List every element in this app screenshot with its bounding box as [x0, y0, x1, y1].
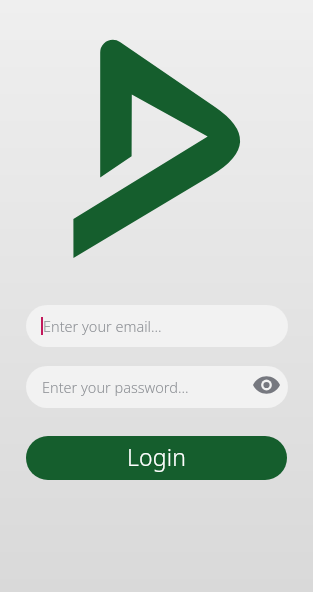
button[interactable]: Login	[26, 436, 287, 480]
staticText: Login	[127, 441, 187, 472]
staticText: Enter your email...	[43, 316, 162, 336]
button[interactable]: Enter your password...	[26, 366, 288, 408]
button[interactable]: Show password	[253, 376, 280, 394]
button[interactable]: Enter your email...	[26, 305, 288, 347]
staticText: Enter your password...	[42, 377, 189, 397]
